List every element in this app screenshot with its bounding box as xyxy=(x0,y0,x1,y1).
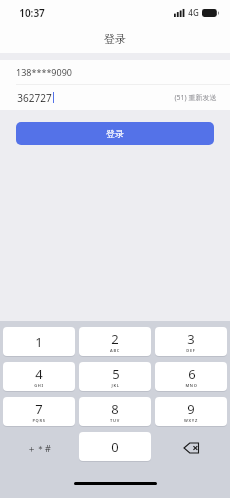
staticText: ＋＊# xyxy=(27,442,51,454)
staticText: MNO xyxy=(185,383,198,388)
staticText: 2 xyxy=(111,330,119,348)
staticText: 6 xyxy=(188,365,196,383)
staticText: 0 xyxy=(111,438,119,456)
staticText: 4 xyxy=(35,365,43,383)
button[interactable]: Symbols xyxy=(3,432,75,463)
staticText: GHI xyxy=(34,383,44,388)
button[interactable]: 9 xyxy=(155,397,227,428)
button[interactable]: 8 xyxy=(79,397,151,428)
button[interactable]: 6 xyxy=(155,362,227,393)
staticText: WXYZ xyxy=(184,418,198,423)
staticText: 登录 xyxy=(104,32,126,46)
button[interactable]: 4 xyxy=(3,362,75,393)
button[interactable]: 3 xyxy=(155,327,227,358)
button[interactable]: Delete xyxy=(155,432,227,463)
staticText: 1 xyxy=(35,333,43,351)
staticText: 7 xyxy=(35,400,43,418)
staticText: DEF xyxy=(186,348,196,353)
staticText: 8 xyxy=(111,400,119,418)
button[interactable]: 2 xyxy=(79,327,151,358)
button[interactable]: 5 xyxy=(79,362,151,393)
button[interactable]: (51) 重新发送 xyxy=(174,93,217,103)
staticText: 138****9090 xyxy=(16,66,72,78)
staticText: JKL xyxy=(111,383,120,388)
staticText: 362727 xyxy=(17,91,52,105)
staticText: 9 xyxy=(187,400,195,418)
staticText: ABC xyxy=(110,348,120,353)
button[interactable]: 7 xyxy=(3,397,75,428)
staticText: (51) 重新发送 xyxy=(174,93,217,103)
staticText: TUV xyxy=(110,418,120,423)
staticText: PQRS xyxy=(32,418,46,423)
staticText: 10:37 xyxy=(19,6,45,20)
staticText: 登录 xyxy=(106,128,124,139)
button[interactable]: 1 xyxy=(3,327,75,358)
button[interactable]: 登录 xyxy=(16,122,214,145)
staticText: 5 xyxy=(112,365,120,383)
button[interactable]: 0 xyxy=(79,432,151,463)
button[interactable]: 138****9090 xyxy=(0,60,230,84)
staticText: 3 xyxy=(187,330,195,348)
staticText: 4G xyxy=(188,7,199,18)
